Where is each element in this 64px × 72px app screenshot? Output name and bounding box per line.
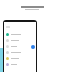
button[interactable] (4, 37, 36, 43)
button[interactable] (4, 43, 36, 49)
button[interactable] (4, 49, 36, 55)
button[interactable] (31, 45, 35, 49)
button[interactable] (4, 55, 36, 61)
button[interactable] (4, 61, 36, 67)
button[interactable] (4, 31, 36, 37)
